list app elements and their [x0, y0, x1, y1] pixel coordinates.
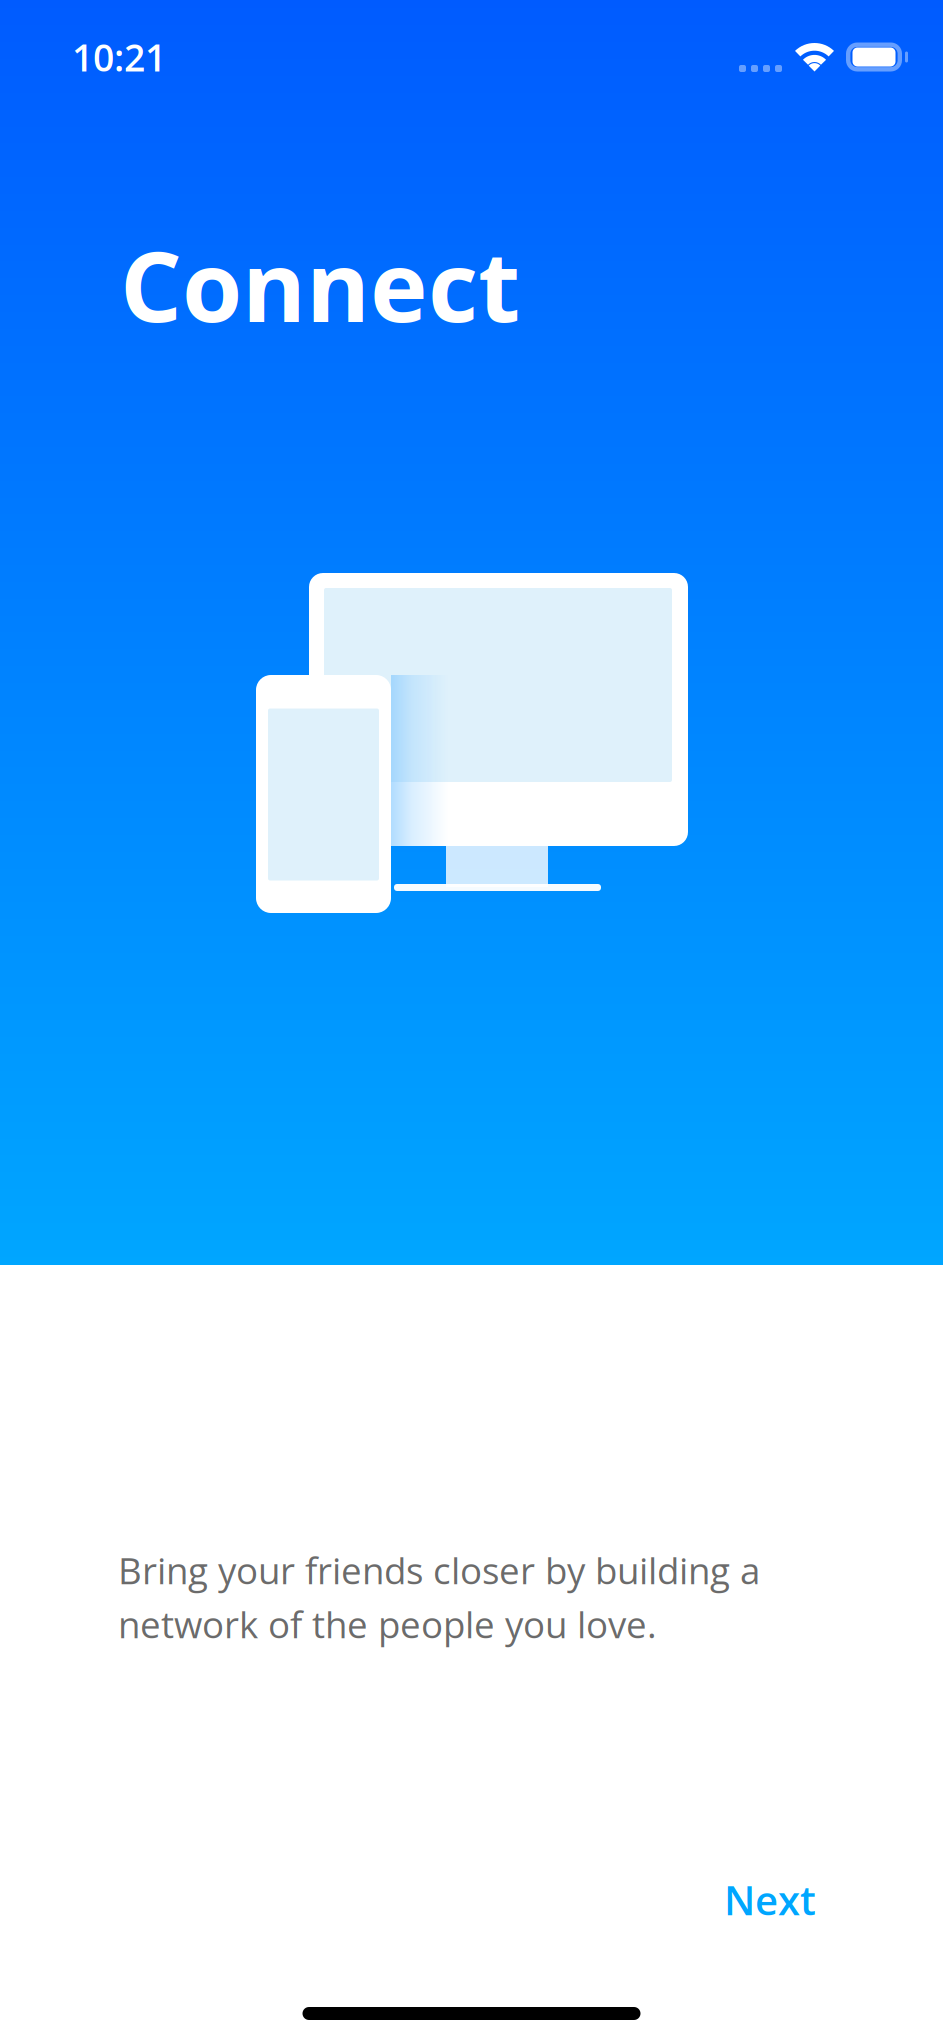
staticText: Connect	[120, 218, 520, 350]
staticText: 10:21	[72, 32, 166, 82]
staticText: Next	[724, 1872, 816, 1927]
button[interactable]: Next	[700, 1854, 840, 1945]
staticText: Bring your friends closer by building a …	[118, 1545, 760, 1649]
